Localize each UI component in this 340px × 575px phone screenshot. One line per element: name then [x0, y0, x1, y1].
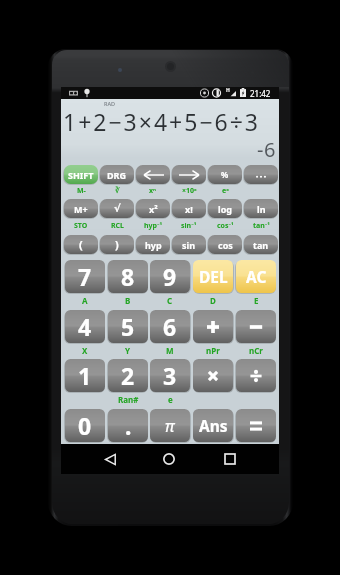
staticText: DRG: [107, 169, 127, 181]
staticText: 0: [78, 410, 92, 441]
staticText: D: [210, 295, 216, 305]
staticText: π: [165, 415, 175, 437]
staticText: Ans: [199, 415, 228, 436]
button[interactable]: Equals: [236, 409, 276, 442]
staticText: 8: [121, 261, 135, 292]
button[interactable]: 0: [65, 409, 105, 442]
staticText: sin: [182, 239, 196, 251]
button[interactable]: Minus: [236, 310, 276, 343]
staticText: AC: [246, 266, 267, 287]
button[interactable]: Ans: [193, 409, 233, 442]
button[interactable]: π: [150, 409, 190, 442]
staticText: 4: [78, 311, 92, 342]
button[interactable]: x²: [136, 199, 170, 218]
button[interactable]: tan: [244, 235, 278, 254]
staticText: tan: [253, 239, 269, 251]
button[interactable]: 4: [65, 310, 105, 343]
button[interactable]: sin: [172, 235, 206, 254]
button[interactable]: DEL: [193, 260, 233, 293]
button[interactable]: 1: [65, 359, 105, 392]
staticText: M+: [74, 203, 88, 215]
staticText: cos: [218, 239, 233, 251]
staticText: Ran#: [118, 394, 139, 404]
staticText: RAD: [104, 100, 116, 107]
button[interactable]: ): [100, 235, 134, 254]
button[interactable]: M+: [64, 199, 98, 218]
button[interactable]: Back: [95, 447, 125, 471]
staticText: eˣ: [222, 186, 229, 196]
staticText: ): [115, 237, 119, 252]
staticText: ln: [257, 203, 266, 215]
staticText: (: [79, 237, 83, 252]
staticText: 7: [78, 261, 92, 292]
button[interactable]: cos: [208, 235, 242, 254]
staticText: 6: [163, 311, 177, 342]
staticText: 1+2−3×4+5−6÷3: [63, 106, 261, 137]
button[interactable]: Plus: [193, 310, 233, 343]
staticText: STO: [74, 221, 88, 231]
staticText: nCr: [249, 345, 263, 355]
staticText: X: [82, 345, 88, 355]
button[interactable]: Recent apps: [215, 447, 245, 471]
staticText: E: [254, 295, 259, 305]
staticText: x²: [149, 203, 158, 215]
button[interactable]: Home: [154, 447, 184, 471]
button[interactable]: √: [100, 199, 134, 218]
button[interactable]: 5: [108, 310, 148, 343]
staticText: xⁿ: [149, 186, 157, 196]
staticText: M: [166, 345, 174, 355]
button[interactable]: log: [208, 199, 242, 218]
button[interactable]: 6: [150, 310, 190, 343]
button[interactable]: SHIFT: [64, 165, 98, 184]
staticText: e: [168, 394, 173, 404]
button[interactable]: DRG: [100, 165, 134, 184]
staticText: SHIFT: [68, 169, 94, 181]
staticText: %: [221, 169, 229, 180]
staticText: hyp: [145, 239, 162, 251]
staticText: A: [82, 295, 88, 305]
staticText: √: [114, 203, 121, 215]
button[interactable]: Multiply: [193, 359, 233, 392]
button[interactable]: 2: [108, 359, 148, 392]
button[interactable]: Move right: [172, 165, 206, 184]
staticText: C: [167, 295, 173, 305]
staticText: 2: [121, 360, 135, 391]
staticText: .: [125, 410, 132, 441]
staticText: B: [125, 295, 131, 305]
button[interactable]: AC: [236, 260, 276, 293]
staticText: DEL: [199, 266, 228, 287]
button[interactable]: 3: [150, 359, 190, 392]
button[interactable]: More options: [244, 165, 278, 184]
button[interactable]: Divide: [236, 359, 276, 392]
staticText: 9: [163, 261, 177, 292]
button[interactable]: x!: [172, 199, 206, 218]
staticText: ×10ˣ: [182, 186, 197, 196]
staticText: nPr: [206, 345, 220, 355]
button[interactable]: (: [64, 235, 98, 254]
button[interactable]: 7: [65, 260, 105, 293]
button[interactable]: Move left: [136, 165, 170, 184]
button[interactable]: hyp: [136, 235, 170, 254]
button[interactable]: 9: [150, 260, 190, 293]
staticText: 5: [121, 311, 135, 342]
button[interactable]: 8: [108, 260, 148, 293]
staticText: x!: [185, 203, 193, 215]
staticText: sin⁻¹: [181, 221, 197, 231]
staticText: -6: [257, 136, 277, 163]
staticText: M-: [77, 186, 86, 196]
staticText: Y: [125, 345, 131, 355]
staticText: log: [218, 203, 232, 215]
staticText: hyp⁻¹: [144, 221, 163, 231]
staticText: ∛: [115, 187, 120, 195]
button[interactable]: %: [208, 165, 242, 184]
staticText: H: [226, 87, 230, 94]
button[interactable]: .: [108, 409, 148, 442]
staticText: 3: [163, 360, 177, 391]
staticText: 1: [78, 360, 92, 391]
staticText: tan⁻¹: [253, 221, 270, 231]
staticText: 21:42: [250, 88, 271, 99]
button[interactable]: ln: [244, 199, 278, 218]
staticText: RCL: [111, 221, 124, 231]
staticText: cos⁻¹: [217, 221, 234, 231]
